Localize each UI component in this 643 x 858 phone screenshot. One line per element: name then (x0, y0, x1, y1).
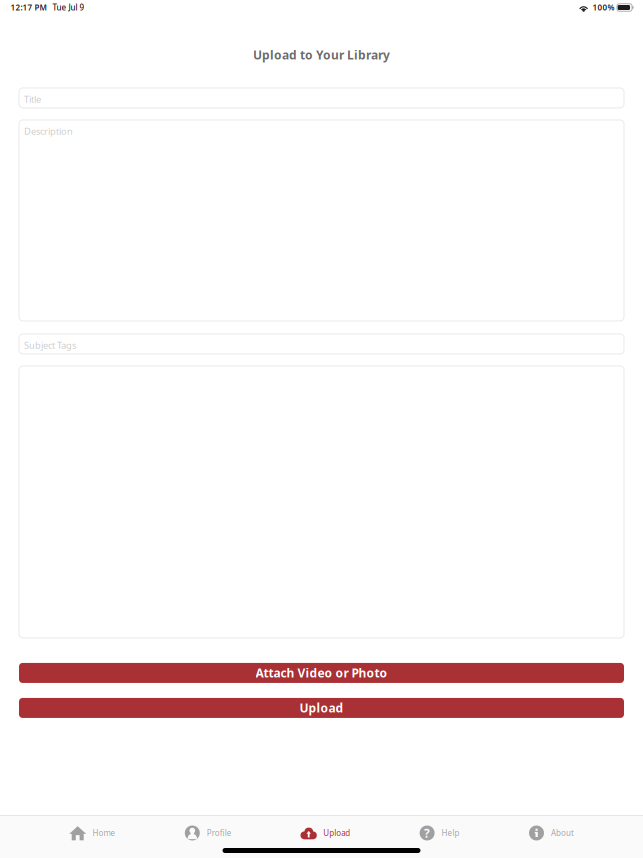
staticText: Description (24, 125, 73, 137)
button[interactable]: Upload (300, 820, 350, 846)
staticText: Help (442, 828, 460, 838)
staticText: 100% (592, 2, 614, 13)
button[interactable]: Upload (19, 698, 624, 718)
button[interactable]: Attach Video or Photo (19, 663, 624, 683)
button[interactable]: Home (69, 820, 115, 846)
staticText: Home (92, 828, 115, 838)
staticText: Upload to Your Library (253, 47, 390, 63)
staticText: Upload (323, 828, 350, 838)
staticText: Title (24, 93, 41, 105)
button[interactable]: Profile (184, 820, 232, 846)
staticText: Profile (207, 828, 232, 838)
staticText: 12:17 PM (10, 2, 46, 13)
staticText: Tue Jul 9 (46, 2, 84, 13)
staticText: Upload (299, 700, 343, 716)
staticText: Subject Tags (24, 339, 76, 351)
staticText: ? (424, 825, 430, 841)
button[interactable]: ? (419, 820, 460, 846)
button[interactable]: About (528, 820, 574, 846)
staticText: About (551, 828, 574, 838)
staticText: Attach Video or Photo (255, 665, 387, 681)
